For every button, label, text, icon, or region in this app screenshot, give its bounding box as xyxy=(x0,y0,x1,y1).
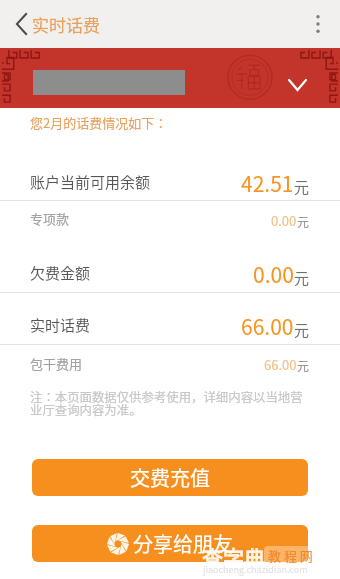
staticText: 实时话费 xyxy=(30,314,91,336)
staticText: 元 xyxy=(294,176,310,198)
staticText: 66.00 xyxy=(241,311,294,341)
staticText: 注：本页面数据仅供参考使用，详细内容以当地营业厅查询内容为准。 xyxy=(30,388,309,419)
staticText: 元 xyxy=(294,267,310,289)
button[interactable]: 交费充值 xyxy=(32,459,308,496)
staticText: 元 xyxy=(297,213,310,230)
staticText: 教 程 网 xyxy=(268,546,313,565)
staticText: 0.00 xyxy=(271,211,297,230)
button[interactable] xyxy=(0,201,340,241)
button[interactable] xyxy=(0,293,340,344)
staticText: 元 xyxy=(297,357,310,374)
staticText: jiaocheng.chazidian.com xyxy=(203,563,308,576)
staticText: 0.00 xyxy=(253,259,294,289)
staticText: 实时话费 xyxy=(32,12,100,37)
staticText: 专项款 xyxy=(30,209,70,228)
button[interactable] xyxy=(0,345,340,385)
staticText: 您2月的话费情况如下： xyxy=(30,113,168,132)
button[interactable]: Switch number xyxy=(281,70,314,100)
button[interactable]: More options xyxy=(300,0,340,48)
staticText: 元 xyxy=(294,319,310,341)
button[interactable]: 分享给朋友 xyxy=(32,525,308,562)
staticText: 交费充值 xyxy=(130,463,210,492)
button[interactable]: Back xyxy=(0,0,32,48)
staticText: 账户当前可用余额 xyxy=(30,171,151,193)
button[interactable] xyxy=(0,241,340,292)
staticText: 包干费用 xyxy=(30,354,83,373)
staticText: 42.51 xyxy=(241,168,294,198)
button[interactable] xyxy=(0,148,340,200)
staticText: 分享给朋友 xyxy=(133,529,233,558)
staticText: 欠费金额 xyxy=(30,262,91,284)
staticText: 66.00 xyxy=(264,355,297,374)
staticText: 查字典 xyxy=(202,542,265,572)
